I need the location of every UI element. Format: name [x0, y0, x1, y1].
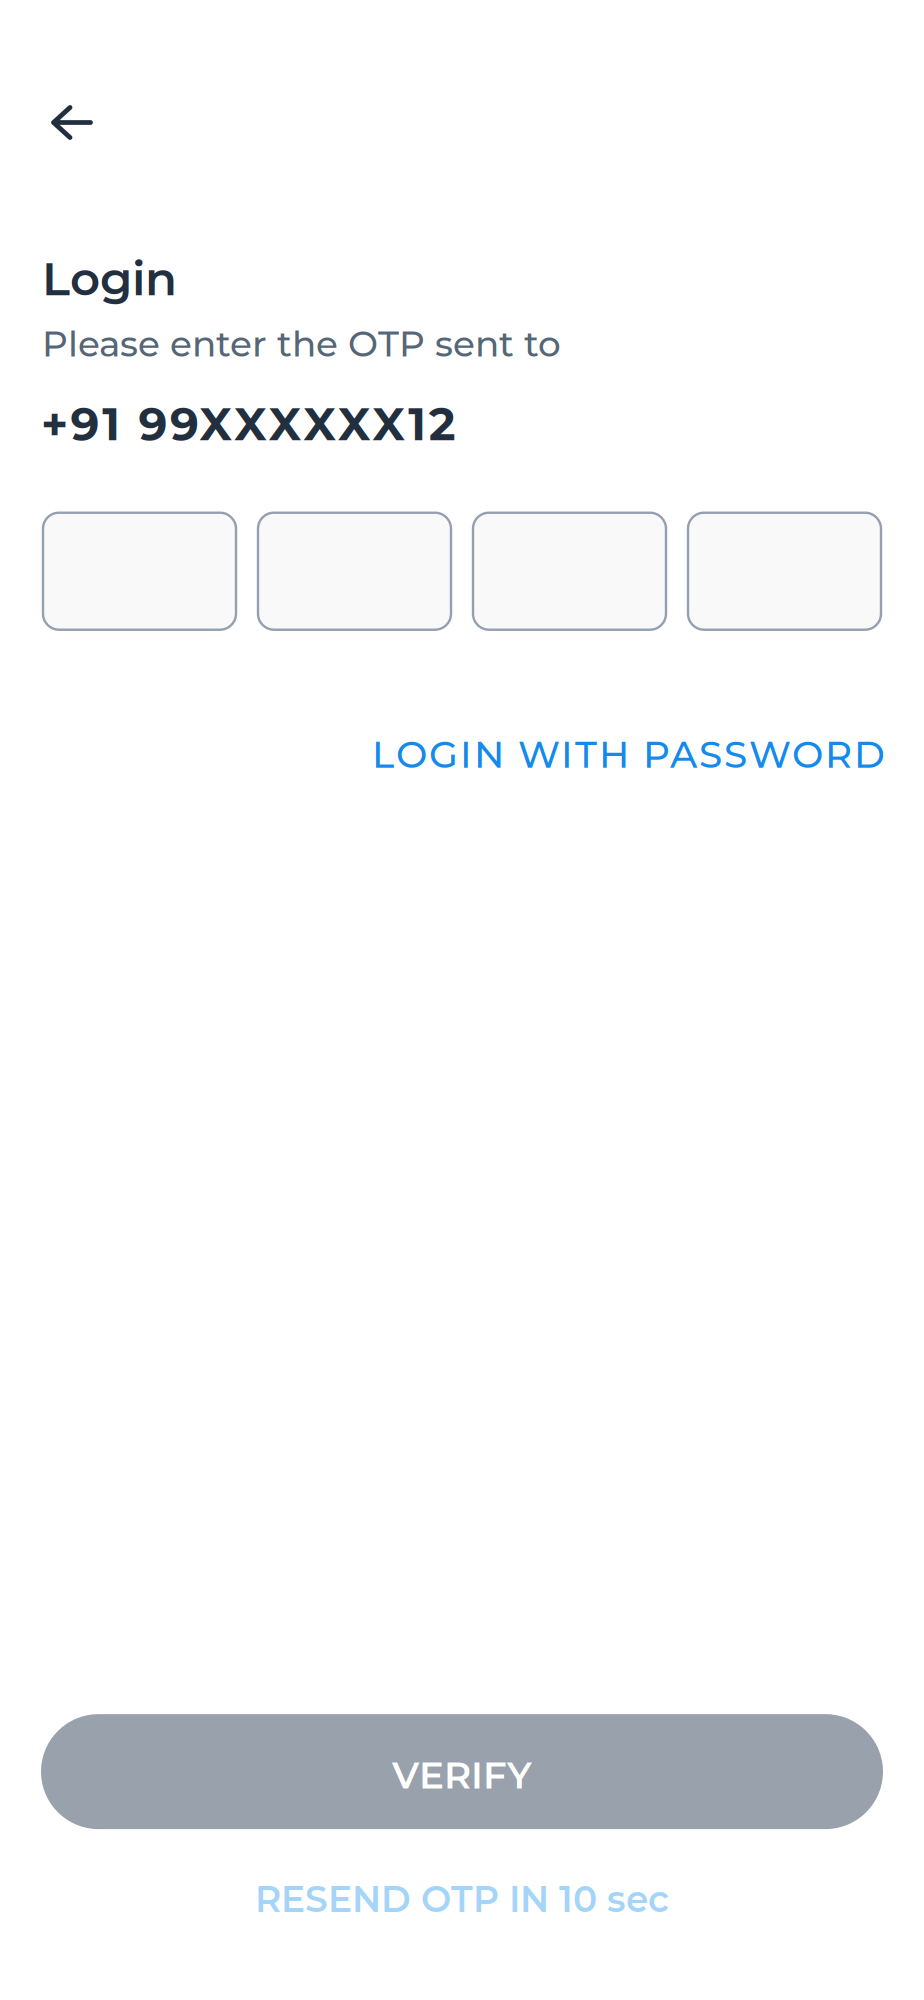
button[interactable]: RESEND OTP IN 10 sec — [0, 1829, 924, 1959]
button[interactable]: OTP digit 1 — [43, 513, 236, 630]
staticText: RESEND OTP IN 10 sec — [255, 1877, 669, 1921]
staticText: LOGIN WITH PASSWORD — [372, 732, 885, 777]
button[interactable]: VERIFY — [41, 1714, 883, 1829]
staticText: Please enter the OTP sent to — [42, 322, 561, 365]
staticText: +91 99XXXXXX12 — [41, 396, 456, 452]
staticText: Login — [42, 250, 177, 307]
button[interactable]: LOGIN WITH PASSWORD — [372, 716, 924, 793]
button[interactable]: OTP digit 3 — [473, 513, 666, 630]
button[interactable]: OTP digit 4 — [688, 513, 881, 630]
button[interactable]: OTP digit 2 — [258, 513, 451, 630]
staticText: VERIFY — [392, 1752, 532, 1798]
button[interactable]: Back — [0, 0, 116, 164]
